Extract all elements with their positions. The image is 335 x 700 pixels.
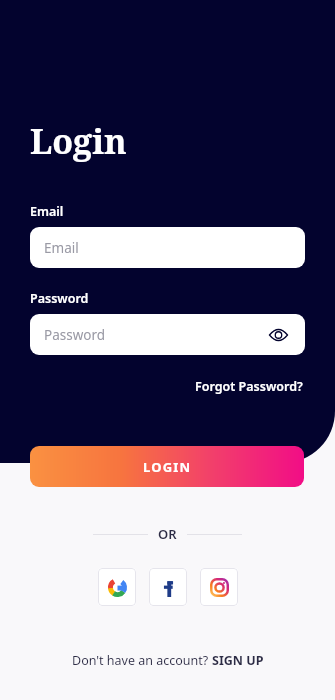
staticText: Forgot Password? bbox=[195, 378, 303, 395]
staticText: Password bbox=[44, 326, 106, 344]
button[interactable]: Forgot Password? bbox=[193, 376, 305, 397]
button[interactable]: Sign in with Facebook bbox=[149, 568, 187, 606]
staticText: OR bbox=[158, 525, 177, 543]
button[interactable]: Sign in with Google bbox=[98, 568, 136, 606]
staticText: SIGN UP bbox=[212, 652, 264, 669]
staticText: Login bbox=[30, 118, 127, 164]
staticText: Don't have an account? bbox=[72, 652, 212, 669]
staticText: Password bbox=[30, 290, 89, 307]
staticText: Email bbox=[44, 239, 79, 257]
button[interactable]: LOGIN bbox=[30, 446, 304, 487]
button[interactable]: Show password bbox=[265, 322, 291, 348]
button[interactable]: Don't have an account? bbox=[68, 648, 268, 673]
button[interactable]: Password bbox=[30, 314, 305, 355]
staticText: LOGIN bbox=[143, 458, 192, 476]
staticText: Email bbox=[30, 203, 64, 220]
button[interactable]: Sign in with Instagram bbox=[200, 568, 238, 606]
button[interactable]: Email bbox=[30, 227, 305, 268]
